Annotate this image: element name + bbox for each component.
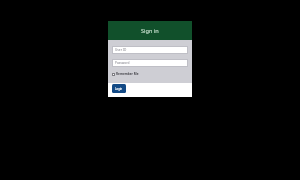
staticText: Remember Me: [116, 72, 139, 76]
staticText: User ID: [115, 48, 127, 52]
staticText: Password: [115, 61, 130, 65]
button[interactable]: Password: [112, 59, 188, 67]
button[interactable]: Login: [112, 84, 126, 93]
button[interactable]: Remember Me: [112, 72, 139, 76]
staticText: Login: [115, 87, 123, 91]
staticText: Sign in: [141, 27, 159, 35]
button[interactable]: User ID: [112, 46, 188, 54]
